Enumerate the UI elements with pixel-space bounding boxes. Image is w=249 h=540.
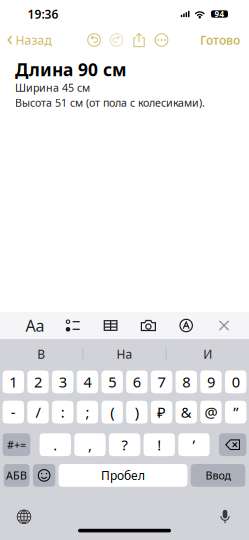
staticText: И [203,346,212,362]
button[interactable]: - [3,401,24,423]
button[interactable]: Ввод [191,464,245,487]
staticText: @ [204,402,217,422]
button[interactable]: АБВ [4,464,30,487]
button[interactable]: / [27,401,49,423]
staticText: 9 [207,372,215,392]
staticText: . [53,435,57,454]
button[interactable]: @ [200,401,222,423]
button[interactable]: ” [225,401,246,423]
staticText: 5 [108,372,116,392]
staticText: 4 [83,372,91,392]
button[interactable]: Эмодзи [33,464,55,487]
button[interactable]: 7 [151,370,172,393]
staticText: ” [233,402,238,422]
staticText: Ширина 45 см [15,80,90,95]
staticText: ? [122,435,128,454]
button[interactable]: Сменить язык [9,505,39,529]
button[interactable]: 3 [52,370,73,393]
button[interactable]: Камера [130,312,166,339]
button[interactable]: Удалить [219,433,246,456]
staticText: АБВ [6,468,27,482]
button[interactable]: 9 [200,370,222,393]
staticText: 2 [34,372,42,392]
staticText: Длина 90 см [15,58,127,81]
staticText: ; [85,402,89,422]
staticText: В [37,346,45,362]
staticText: 8 [182,372,190,392]
button[interactable]: : [52,401,73,423]
button[interactable]: ’ [178,433,210,456]
staticText: & [181,402,192,422]
staticText: / [35,402,40,422]
staticText: ’ [192,435,195,454]
button[interactable]: & [176,401,197,423]
button[interactable]: 1 [3,370,24,393]
staticText: 0 [232,372,240,392]
button[interactable]: #+= [3,433,30,456]
button[interactable]: Таблица [93,312,129,339]
staticText: ₽ [157,402,166,422]
button[interactable]: ? [109,433,140,456]
button[interactable]: 0 [225,370,246,393]
staticText: #+= [7,438,26,452]
button[interactable]: Диктовка [210,505,240,529]
staticText: 94 [214,9,224,19]
button[interactable]: Отменить [83,28,105,52]
staticText: 1 [9,372,17,392]
staticText: ) [135,402,139,422]
staticText: Готово [200,32,240,48]
staticText: Ввод [206,468,231,482]
button[interactable]: Формат [17,312,53,339]
staticText: Aa [25,315,44,336]
button[interactable]: ! [144,433,175,456]
button[interactable]: Закрыть [206,312,242,339]
button[interactable]: И [166,339,249,369]
staticText: Высота 51 см (от пола с колесиками). [15,95,205,110]
button[interactable]: . [40,433,71,456]
button[interactable]: В [0,339,82,369]
button[interactable]: Повторить [105,28,128,52]
staticText: 19:36 [27,6,58,22]
staticText: 3 [59,372,67,392]
button[interactable]: ; [77,401,98,423]
staticText: : [61,402,65,422]
staticText: ( [110,402,114,422]
staticText: , [88,435,92,454]
staticText: На [116,346,132,362]
button[interactable]: ₽ [151,401,172,423]
button[interactable]: Назад [0,28,56,52]
button[interactable]: Ещё [150,28,173,52]
button[interactable]: Готово [200,28,249,52]
staticText: - [11,402,16,422]
button[interactable]: 5 [101,370,123,393]
staticText: 6 [133,372,141,392]
staticText: Пробел [101,467,145,483]
staticText: Назад [16,32,52,48]
button[interactable]: , [74,433,106,456]
button[interactable]: ( [101,401,123,423]
button[interactable]: Контрольный список [55,312,91,339]
button[interactable]: 2 [27,370,49,393]
button[interactable]: Разметка [168,312,204,339]
button[interactable]: Пробел [59,464,187,487]
button[interactable]: 4 [77,370,98,393]
staticText: 7 [158,372,166,392]
button[interactable]: На [83,339,166,369]
staticText: ! [157,435,161,454]
button[interactable]: Поделиться [128,28,150,52]
button[interactable]: 6 [126,370,148,393]
button[interactable]: 8 [176,370,197,393]
button[interactable]: ) [126,401,148,423]
